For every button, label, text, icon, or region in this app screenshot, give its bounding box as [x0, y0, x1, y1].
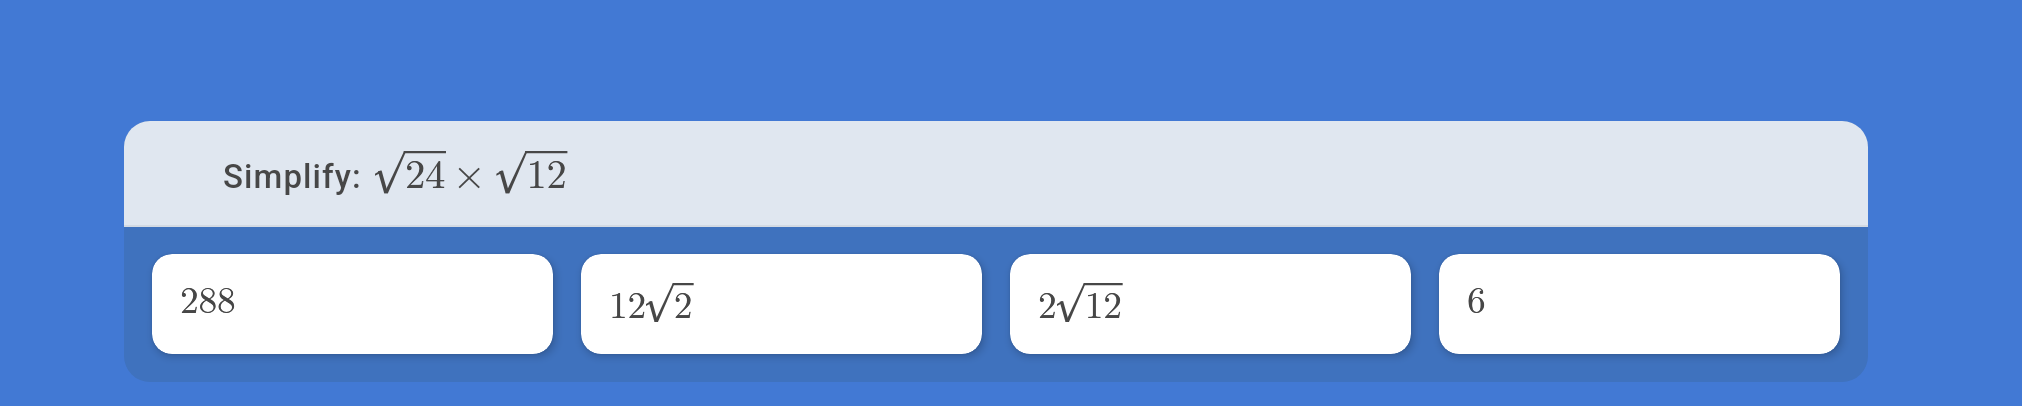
- button[interactable]: 6: [1439, 254, 1840, 354]
- button[interactable]: 288: [152, 254, 553, 354]
- staticText: Simplify:: [223, 157, 362, 196]
- button[interactable]: 2 root 12: [1010, 254, 1411, 354]
- button[interactable]: 12 root 2: [581, 254, 982, 354]
